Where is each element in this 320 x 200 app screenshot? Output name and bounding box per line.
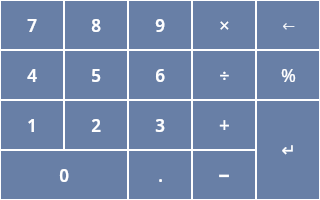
staticText: − (218, 162, 230, 189)
button[interactable]: 2 (65, 101, 127, 149)
button[interactable]: 7 (1, 1, 63, 49)
staticText: 4 (27, 64, 37, 87)
button[interactable]: 6 (129, 51, 191, 99)
button[interactable]: Enter (257, 101, 319, 199)
staticText: 5 (91, 64, 101, 87)
staticText: ↵ (281, 140, 296, 160)
staticText: . (158, 164, 163, 187)
button[interactable]: Minus (193, 151, 255, 199)
button[interactable]: 4 (1, 51, 63, 99)
staticText: 9 (155, 14, 165, 37)
staticText: 8 (91, 14, 101, 37)
staticText: 1 (27, 114, 37, 137)
button[interactable]: 9 (129, 1, 191, 49)
staticText: % (281, 63, 296, 88)
staticText: 7 (27, 14, 37, 37)
button[interactable]: 1 (1, 101, 63, 149)
staticText: + (219, 112, 230, 138)
staticText: ← (282, 17, 295, 34)
button[interactable]: 5 (65, 51, 127, 99)
button[interactable]: . (129, 151, 191, 199)
button[interactable]: 3 (129, 101, 191, 149)
button[interactable]: 8 (65, 1, 127, 49)
button[interactable]: Backspace (257, 1, 319, 49)
staticText: ÷ (219, 63, 230, 88)
button[interactable]: Plus (193, 101, 255, 149)
button[interactable]: 0 (1, 151, 127, 199)
staticText: 0 (59, 164, 69, 187)
staticText: 3 (155, 114, 165, 137)
staticText: 2 (91, 114, 101, 137)
button[interactable]: Divide (193, 51, 255, 99)
button[interactable]: Percent (257, 51, 319, 99)
staticText: 6 (155, 64, 165, 87)
button[interactable]: Multiply (193, 1, 255, 49)
staticText: × (219, 13, 230, 38)
